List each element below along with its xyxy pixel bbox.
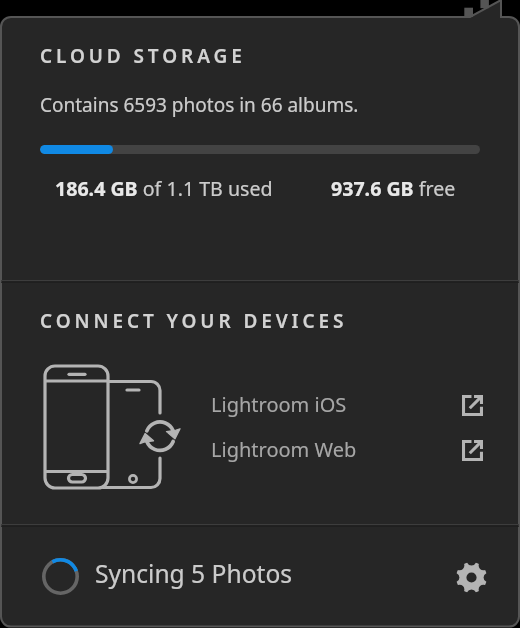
staticText: CLOUD STORAGE [40, 43, 246, 69]
staticText: Lightroom iOS [211, 391, 347, 418]
staticText: 937.6 GB free [331, 175, 456, 202]
staticText: 186.4 GB of 1.1 TB used [55, 175, 273, 202]
staticText: Syncing 5 Photos [95, 557, 293, 591]
button[interactable]: Lightroom Web [206, 433, 488, 467]
staticText: Contains 6593 photos in 66 albums. [40, 92, 359, 118]
staticText: Lightroom Web [211, 436, 357, 463]
button[interactable]: Settings [446, 552, 496, 602]
staticText: CONNECT YOUR DEVICES [40, 308, 348, 334]
button[interactable]: Lightroom iOS [206, 388, 488, 422]
